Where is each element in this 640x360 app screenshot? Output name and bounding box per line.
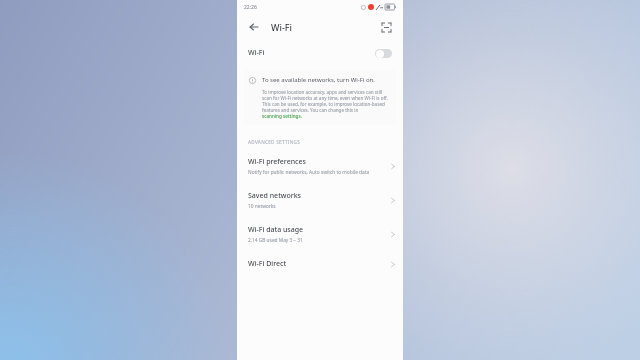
button[interactable]: Wi-Fi Direct: [237, 252, 403, 277]
staticText: Wi-Fi Direct: [248, 259, 287, 269]
button[interactable]: scanning settings.: [262, 113, 302, 119]
staticText: Saved networks: [248, 191, 302, 201]
button[interactable]: Back: [245, 18, 263, 36]
button[interactable]: Saved networks: [237, 184, 403, 218]
button[interactable]: Wi-Fi preferences: [237, 150, 403, 184]
staticText: To see available networks, turn Wi-Fi on…: [262, 76, 375, 84]
staticText: Wi-Fi: [271, 21, 292, 33]
button[interactable]: Scan QR code: [377, 18, 395, 36]
staticText: Wi-Fi: [248, 48, 265, 58]
button[interactable]: Wi-Fi: [237, 40, 403, 66]
staticText: 10 networks: [248, 203, 276, 210]
staticText: Notify for public networks, Auto switch …: [248, 169, 370, 176]
staticText: Wi-Fi data usage: [248, 225, 304, 235]
staticText: Wi-Fi preferences: [248, 157, 306, 167]
staticText: ADVANCED SETTINGS: [248, 139, 301, 145]
button[interactable]: Wi-Fi data usage: [237, 218, 403, 252]
button[interactable]: Wi-Fi off: [375, 49, 392, 58]
staticText: To improve location accuracy, apps and s…: [262, 89, 391, 113]
staticText: 2.14 GB used May 3 – 31: [248, 237, 303, 244]
staticText: 22:26: [244, 4, 257, 11]
